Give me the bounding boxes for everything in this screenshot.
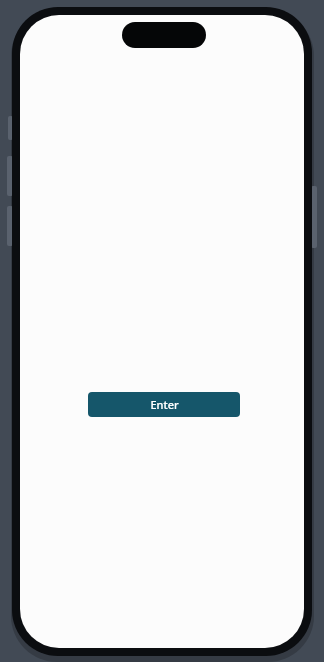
staticText: Enter bbox=[150, 397, 179, 412]
button[interactable]: Enter bbox=[88, 392, 240, 417]
